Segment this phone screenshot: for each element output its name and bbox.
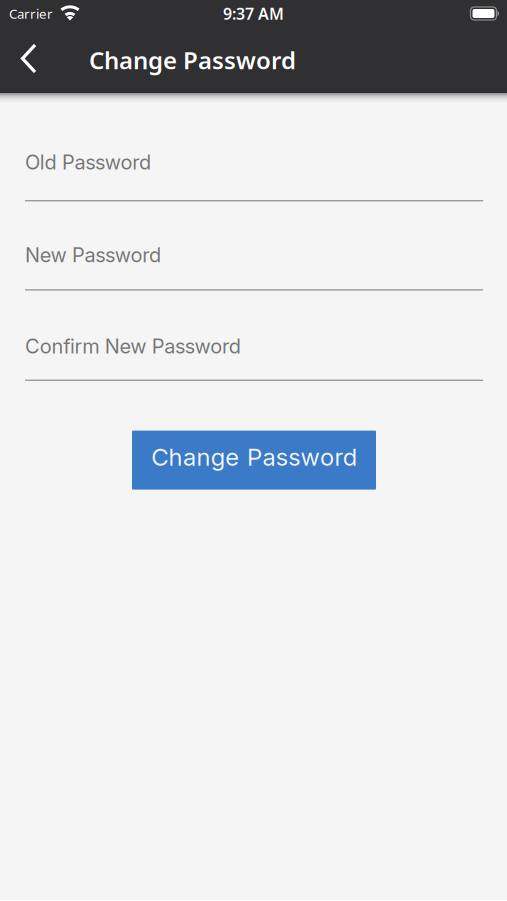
staticText: Change Password [89, 44, 296, 76]
staticText: Change Password [151, 443, 357, 471]
staticText: New Password [25, 243, 161, 267]
button[interactable]: Back [14, 43, 38, 76]
button[interactable]: New Password [25, 243, 483, 291]
staticText: Carrier [9, 5, 53, 22]
staticText: Confirm New Password [25, 334, 241, 358]
button[interactable]: Confirm New Password [25, 334, 483, 381]
staticText: Old Password [25, 150, 151, 174]
button[interactable]: Change Password [132, 431, 376, 490]
staticText: 9:37 AM [223, 3, 284, 24]
button[interactable]: Old Password [25, 150, 483, 201]
